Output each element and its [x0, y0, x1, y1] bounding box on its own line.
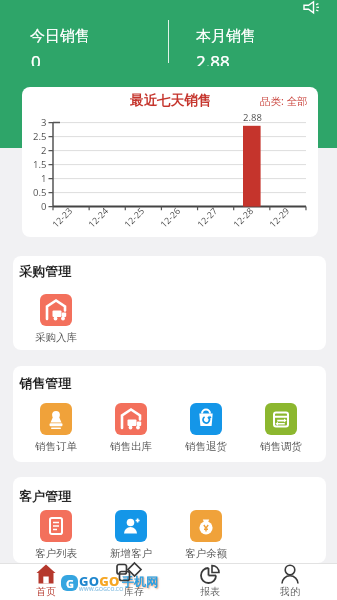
- staticText: 12-28: [230, 204, 256, 230]
- staticText: 客户列表: [35, 547, 77, 560]
- staticText: 客户管理: [19, 488, 71, 504]
- button[interactable]: 销售调货: [243, 403, 319, 453]
- staticText: 库存: [124, 585, 144, 598]
- staticText: 今日销售: [30, 27, 90, 43]
- button[interactable]: 客户列表: [18, 510, 94, 560]
- staticText: 1: [41, 172, 47, 184]
- staticText: 销售出库: [110, 440, 152, 453]
- staticText: 0: [41, 200, 47, 212]
- staticText: 销售订单: [35, 440, 77, 453]
- staticText: 品类: 全部: [260, 94, 308, 107]
- button[interactable]: 我的: [248, 564, 332, 600]
- staticText: 12-29: [266, 204, 292, 230]
- staticText: 新增客户: [110, 547, 152, 560]
- button[interactable]: 首页: [4, 564, 88, 600]
- staticText: 销售退货: [185, 440, 227, 453]
- button[interactable]: 新增客户: [93, 510, 169, 560]
- button[interactable]: 销售退货: [168, 403, 244, 453]
- button[interactable]: 销售订单: [18, 403, 94, 453]
- staticText: 2.5: [33, 130, 47, 142]
- staticText: 2: [41, 144, 47, 156]
- staticText: 首页: [36, 585, 56, 598]
- staticText: 最近七天销售: [130, 92, 211, 107]
- button[interactable]: 采购入库: [18, 294, 94, 344]
- staticText: 2.88: [243, 111, 262, 124]
- staticText: 采购入库: [35, 331, 77, 344]
- staticText: 12-26: [157, 204, 183, 230]
- button[interactable]: 客户余额: [168, 510, 244, 560]
- staticText: 销售管理: [19, 375, 71, 391]
- button[interactable]: 报表: [168, 564, 252, 600]
- staticText: 报表: [200, 585, 220, 598]
- staticText: 2.88: [196, 50, 230, 66]
- staticText: 客户余额: [185, 547, 227, 560]
- staticText: 12-23: [49, 204, 75, 230]
- staticText: 销售调货: [260, 440, 302, 453]
- staticText: 12-24: [85, 204, 111, 230]
- button[interactable]: 销售出库: [93, 403, 169, 453]
- staticText: 12-25: [121, 204, 147, 230]
- staticText: 0: [31, 50, 41, 66]
- staticText: 0.5: [33, 186, 47, 198]
- staticText: WWW.GOGCO.COM: [79, 586, 124, 593]
- staticText: 采购管理: [19, 263, 71, 279]
- button[interactable]: 库存: [92, 564, 176, 600]
- staticText: GOGO: [79, 572, 120, 590]
- staticText: 手机网: [122, 574, 158, 589]
- staticText: 3: [41, 116, 47, 128]
- staticText: 本月销售: [196, 27, 256, 43]
- staticText: 1.5: [33, 158, 47, 170]
- staticText: 我的: [280, 585, 300, 598]
- staticText: 12-27: [194, 204, 220, 230]
- staticText: G: [66, 576, 74, 591]
